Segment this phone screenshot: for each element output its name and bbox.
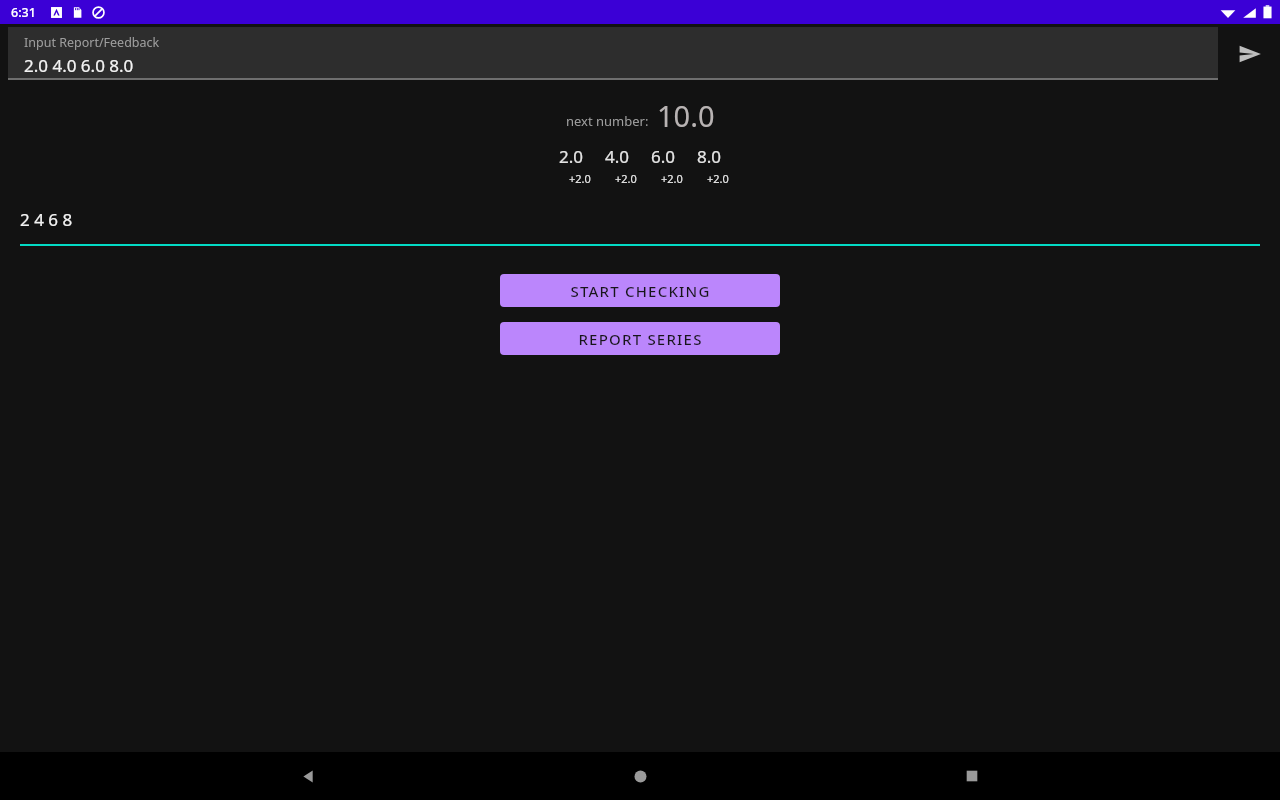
staticText: +2.0	[615, 171, 637, 186]
staticText: 6:31	[11, 4, 36, 21]
staticText: +2.0	[661, 171, 683, 186]
button[interactable]: Input Report/Feedback	[8, 27, 1218, 80]
button[interactable]: Recent apps	[948, 752, 996, 800]
staticText: REPORT SERIES	[578, 329, 703, 349]
staticText: 2 4 6 8	[20, 208, 73, 231]
staticText: +2.0	[569, 171, 591, 186]
staticText: 2.0 4.0 6.0 8.0	[24, 54, 134, 77]
staticText: Input Report/Feedback	[24, 34, 160, 51]
button[interactable]: Home	[616, 752, 664, 800]
staticText: next number:	[566, 112, 649, 130]
button[interactable]: 2 4 6 8	[20, 206, 1260, 246]
button[interactable]: Back	[284, 752, 332, 800]
button[interactable]: REPORT SERIES	[500, 322, 780, 355]
staticText: 10.0	[657, 96, 715, 135]
staticText: 8.0	[697, 145, 722, 168]
button[interactable]: START CHECKING	[500, 274, 780, 307]
staticText: START CHECKING	[570, 281, 711, 301]
button[interactable]: Send	[1226, 30, 1274, 78]
staticText: 2.0	[559, 145, 584, 168]
staticText: 6.0	[651, 145, 676, 168]
staticText: 4.0	[605, 145, 630, 168]
staticText: +2.0	[707, 171, 729, 186]
